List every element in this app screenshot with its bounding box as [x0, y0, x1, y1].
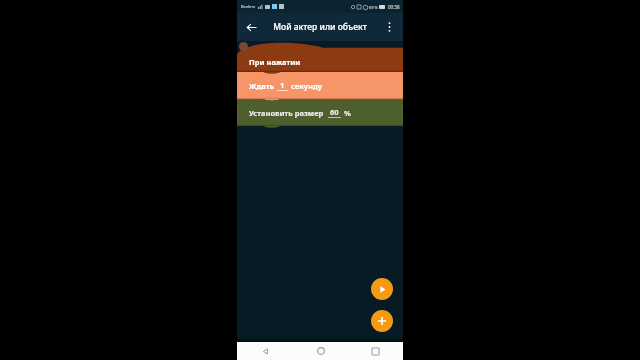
staticText: Beeline — [241, 4, 256, 9]
staticText: 00:38 — [388, 4, 400, 10]
staticText: 69 % — [369, 5, 378, 10]
staticText: При нажатии — [249, 57, 301, 67]
button[interactable]: Установить размер — [237, 99, 403, 126]
button[interactable]: Home — [293, 342, 348, 360]
button[interactable]: Recent apps — [348, 342, 403, 360]
button[interactable]: Run — [371, 278, 393, 300]
button[interactable]: 1 — [277, 80, 288, 91]
button[interactable]: Back — [240, 16, 262, 38]
staticText: Установить размер — [249, 108, 324, 118]
staticText: % — [344, 108, 351, 118]
staticText: 60 — [330, 107, 339, 117]
staticText: Ждать — [249, 81, 274, 91]
button[interactable]: 60 — [328, 107, 341, 118]
button[interactable]: Back — [237, 342, 293, 360]
button[interactable]: При нажатии — [237, 41, 403, 72]
button[interactable]: Add block — [371, 310, 393, 332]
button[interactable]: More options — [378, 16, 400, 38]
button[interactable]: Ждать — [237, 72, 403, 99]
staticText: секунду — [291, 81, 323, 91]
staticText: 1 — [280, 80, 285, 90]
staticText: Мой актер или объект — [273, 21, 367, 33]
